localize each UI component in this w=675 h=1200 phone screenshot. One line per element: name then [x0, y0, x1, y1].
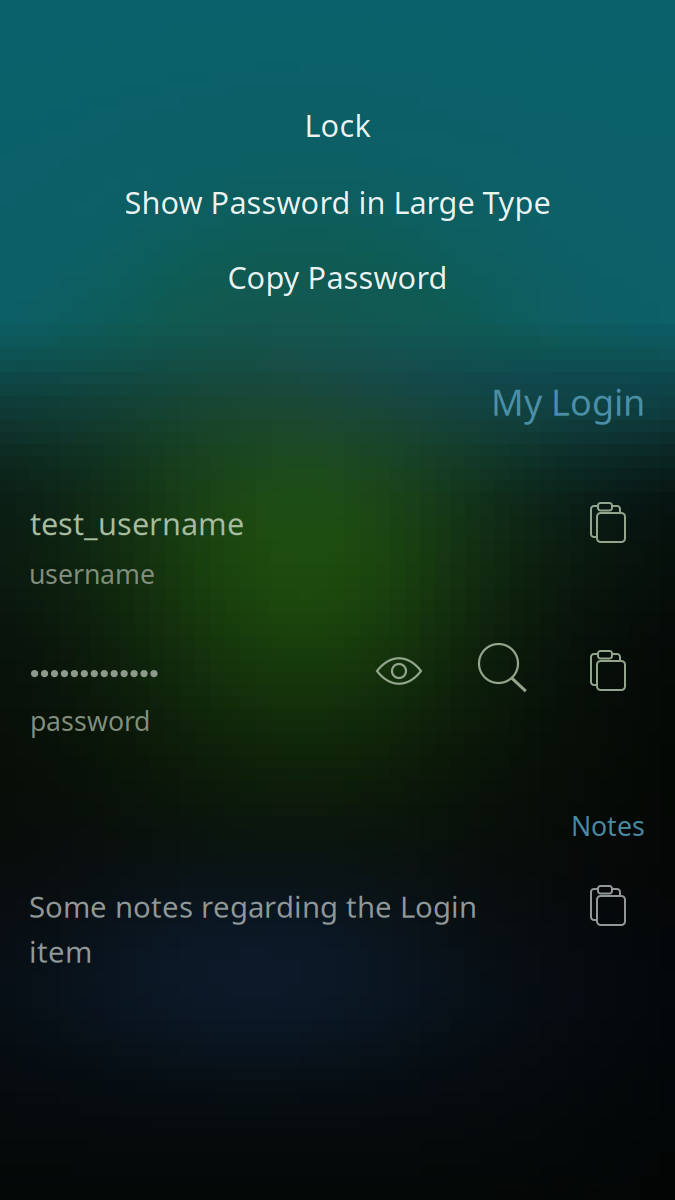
staticText: My Login [491, 378, 645, 426]
staticText: password [30, 703, 150, 738]
button[interactable]: Lock [0, 95, 675, 155]
staticText: username [29, 556, 155, 591]
staticText: Copy Password [227, 257, 447, 297]
button[interactable]: Show password in large type [479, 644, 529, 694]
button[interactable]: Show Password in Large Type [0, 172, 675, 232]
button[interactable]: Copy Password [0, 247, 675, 307]
button[interactable]: Copy username [585, 498, 631, 548]
button[interactable]: Copy notes [585, 881, 631, 931]
staticText: Show Password in Large Type [124, 182, 550, 222]
staticText: Notes [571, 808, 645, 843]
button[interactable]: Copy password [585, 646, 631, 696]
staticText: Lock [304, 105, 370, 145]
staticText: test_username [30, 503, 244, 544]
staticText: Some notes regarding the Login item [29, 887, 477, 971]
button[interactable]: Reveal password [376, 657, 422, 685]
